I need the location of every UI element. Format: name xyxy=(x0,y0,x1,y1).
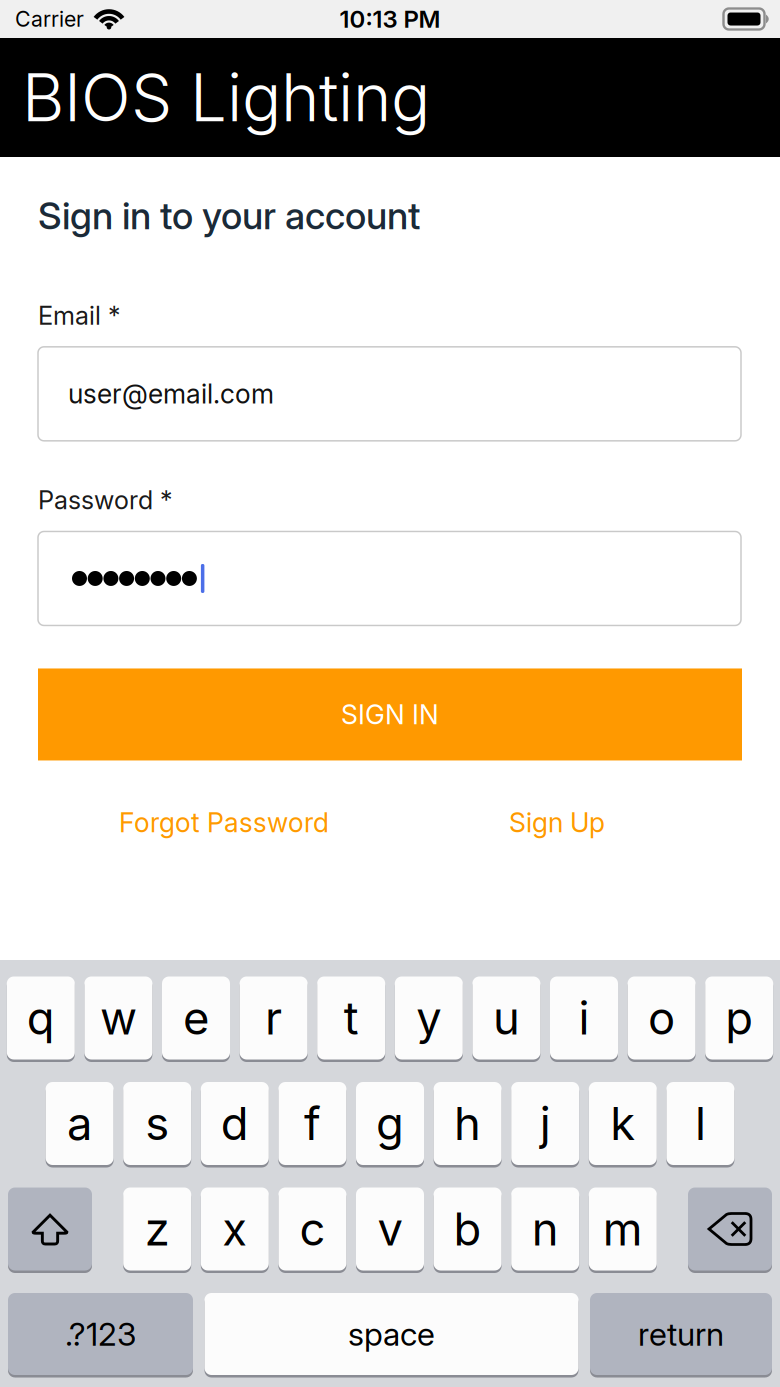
staticText: l xyxy=(695,1096,706,1151)
staticText: q xyxy=(27,991,55,1045)
button[interactable]: u xyxy=(472,976,540,1062)
button[interactable]: y xyxy=(395,976,463,1062)
staticText: z xyxy=(145,1202,170,1256)
staticText: k xyxy=(610,1096,635,1151)
button[interactable]: g xyxy=(356,1082,424,1167)
button[interactable]: n xyxy=(511,1187,579,1273)
staticText: i xyxy=(578,991,589,1045)
button[interactable]: Sign Up xyxy=(505,802,609,842)
staticText: j xyxy=(540,1096,551,1151)
staticText: p xyxy=(725,991,753,1045)
staticText: Forgot Password xyxy=(119,806,329,839)
button[interactable]: i xyxy=(550,976,618,1062)
button[interactable]: l xyxy=(666,1082,734,1167)
button[interactable]: t xyxy=(317,976,385,1062)
staticText: user@email.com xyxy=(68,378,274,410)
button[interactable]: Shift xyxy=(8,1187,92,1273)
button[interactable]: .?123 xyxy=(8,1293,193,1377)
staticText: d xyxy=(221,1096,249,1151)
button[interactable]: h xyxy=(434,1082,502,1167)
staticText: m xyxy=(603,1202,643,1256)
button[interactable]: b xyxy=(434,1187,502,1273)
staticText: return xyxy=(638,1315,724,1353)
staticText: h xyxy=(454,1096,481,1151)
button[interactable] xyxy=(38,531,741,625)
button[interactable]: a xyxy=(46,1082,114,1167)
button[interactable]: p xyxy=(705,976,773,1062)
staticText: e xyxy=(183,991,209,1045)
button[interactable]: f xyxy=(278,1082,346,1167)
staticText: x xyxy=(222,1202,247,1256)
button[interactable]: q xyxy=(7,976,75,1062)
button[interactable]: w xyxy=(84,976,152,1062)
staticText: n xyxy=(532,1202,559,1256)
staticText: s xyxy=(145,1096,169,1151)
staticText: b xyxy=(454,1202,482,1256)
staticText: 10:13 PM xyxy=(339,4,440,33)
button[interactable]: e xyxy=(162,976,230,1062)
button[interactable]: r xyxy=(240,976,308,1062)
button[interactable]: v xyxy=(356,1187,424,1273)
staticText: Sign in to your account xyxy=(38,193,420,238)
staticText: BIOS Lighting xyxy=(22,58,430,137)
staticText: c xyxy=(299,1202,325,1256)
button[interactable]: m xyxy=(589,1187,657,1273)
staticText: Email * xyxy=(38,300,120,331)
button[interactable]: d xyxy=(201,1082,269,1167)
button[interactable]: c xyxy=(278,1187,346,1273)
button[interactable]: z xyxy=(123,1187,191,1273)
staticText: Carrier xyxy=(15,6,84,32)
button[interactable]: return xyxy=(590,1293,772,1377)
staticText: y xyxy=(416,991,441,1045)
staticText: o xyxy=(648,991,675,1045)
button[interactable]: Forgot Password xyxy=(116,802,332,842)
button[interactable]: x xyxy=(201,1187,269,1273)
staticText: a xyxy=(67,1096,92,1151)
staticText: f xyxy=(304,1096,321,1151)
button[interactable]: j xyxy=(511,1082,579,1167)
staticText: Password * xyxy=(38,485,172,515)
button[interactable]: s xyxy=(123,1082,191,1167)
staticText: g xyxy=(376,1096,404,1151)
button[interactable]: o xyxy=(628,976,696,1062)
staticText: u xyxy=(493,991,520,1045)
staticText: SIGN IN xyxy=(341,698,439,731)
button[interactable]: Delete xyxy=(688,1187,772,1273)
staticText: w xyxy=(100,991,137,1045)
staticText: Sign Up xyxy=(509,806,605,839)
staticText: space xyxy=(348,1315,435,1353)
staticText: v xyxy=(377,1202,402,1256)
button[interactable]: space xyxy=(204,1293,578,1377)
staticText: t xyxy=(344,991,359,1045)
button[interactable]: SIGN IN xyxy=(38,668,742,760)
staticText: .?123 xyxy=(65,1315,136,1353)
button[interactable]: k xyxy=(589,1082,657,1167)
button[interactable]: user@email.com xyxy=(38,347,741,441)
staticText: r xyxy=(265,991,282,1045)
